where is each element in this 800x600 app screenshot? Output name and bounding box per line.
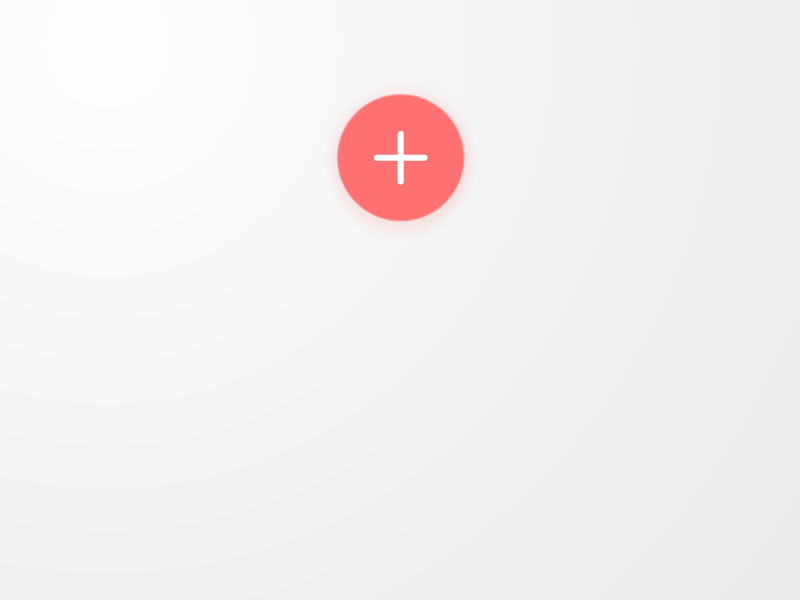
- button[interactable]: Add: [337, 94, 464, 221]
